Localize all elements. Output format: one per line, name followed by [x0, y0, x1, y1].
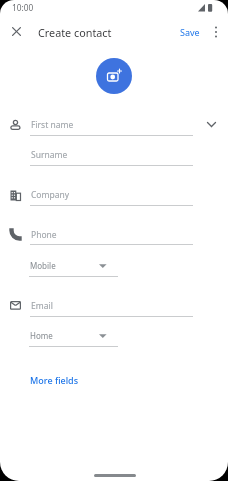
button[interactable]: Surname	[30, 146, 193, 164]
staticText: Save	[180, 26, 200, 38]
staticText: Create contact	[38, 25, 112, 40]
button[interactable]: Mobile	[29, 257, 118, 277]
staticText: Email	[31, 300, 53, 312]
button[interactable]: Home	[29, 327, 118, 347]
staticText: First name	[31, 119, 74, 131]
button[interactable]: Phone	[30, 226, 193, 244]
staticText: Surname	[31, 149, 68, 161]
button[interactable]	[207, 23, 224, 41]
staticText: Home	[30, 330, 53, 341]
button[interactable]: Company	[30, 186, 193, 204]
staticText: Company	[31, 189, 70, 201]
button[interactable]	[96, 58, 132, 94]
staticText: Mobile	[30, 260, 56, 271]
staticText: 10:00	[12, 2, 34, 13]
staticText: Phone	[31, 229, 57, 241]
button[interactable]	[202, 115, 221, 134]
button[interactable]: First name	[30, 116, 193, 134]
button[interactable]: Email	[30, 297, 193, 315]
button[interactable]	[6, 21, 26, 41]
button[interactable]: More fields	[24, 370, 84, 389]
staticText: More fields	[30, 374, 79, 386]
button[interactable]: Save	[174, 24, 206, 40]
